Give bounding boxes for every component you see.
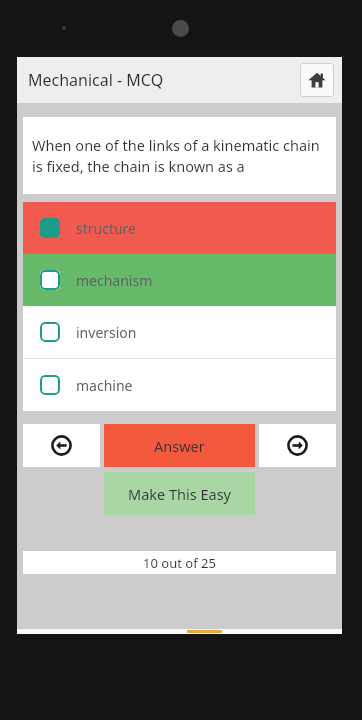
button[interactable]: mechanism bbox=[23, 254, 336, 306]
staticText: inversion bbox=[76, 323, 137, 342]
staticText: Answer bbox=[154, 436, 205, 456]
button[interactable]: inversion bbox=[23, 306, 336, 358]
button[interactable]: Next question bbox=[259, 424, 336, 467]
staticText: machine bbox=[76, 376, 133, 395]
button[interactable]: structure bbox=[23, 202, 336, 254]
button[interactable]: Answer bbox=[104, 424, 255, 467]
staticText: mechanism bbox=[76, 271, 153, 290]
staticText: structure bbox=[76, 219, 137, 238]
staticText: Mechanical - MCQ bbox=[28, 69, 300, 91]
staticText: 10 out of 25 bbox=[143, 554, 216, 572]
button[interactable]: Make This Easy bbox=[104, 472, 255, 515]
button[interactable]: machine bbox=[23, 359, 336, 411]
button[interactable]: Home bbox=[300, 63, 334, 97]
staticText: Make This Easy bbox=[128, 484, 231, 504]
staticText: When one of the links of a kinematic cha… bbox=[32, 135, 327, 177]
button[interactable]: Previous question bbox=[23, 424, 100, 467]
